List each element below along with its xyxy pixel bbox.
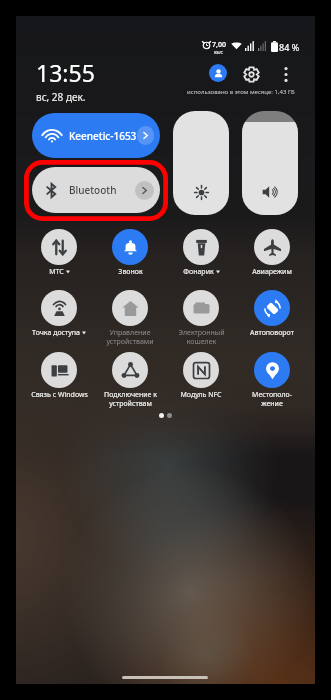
button[interactable]: Brightness <box>173 111 229 215</box>
button[interactable]: Home <box>122 676 208 679</box>
staticText: Управление устройствами <box>106 328 154 346</box>
staticText: Электронный кошелек <box>178 328 225 346</box>
button[interactable]: Подключение к устройствам <box>95 352 165 408</box>
button[interactable]: Keenetic-1653 <box>32 113 160 158</box>
staticText: Модуль NFC <box>180 390 222 400</box>
staticText: КБ/С <box>214 50 224 55</box>
staticText: Связь с Windows <box>31 390 88 400</box>
staticText: использовано в этом месяце: 1,43 ГБ <box>187 88 295 96</box>
button[interactable]: Автоповорот <box>237 290 307 338</box>
button[interactable]: Электронный кошелек <box>166 290 236 346</box>
staticText: Фонарик <box>183 267 214 277</box>
button[interactable]: Авиарежим <box>237 229 307 277</box>
staticText: Точка доступа <box>32 328 80 338</box>
staticText: Местополо- жение <box>252 390 292 408</box>
staticText: 84 % <box>279 41 300 53</box>
staticText: Звонок <box>118 267 143 277</box>
staticText: вс, 28 дек. <box>36 90 86 104</box>
staticText: МТС <box>49 267 64 277</box>
button[interactable]: Account <box>209 64 227 82</box>
button[interactable]: Volume <box>242 111 298 215</box>
staticText: 13:55 <box>36 57 95 88</box>
button[interactable]: Фонарик <box>166 229 236 277</box>
button[interactable]: Settings <box>242 65 260 83</box>
button[interactable]: Местополо- жение <box>237 352 307 408</box>
button[interactable]: Управление устройствами <box>95 290 165 346</box>
button[interactable]: Звонок <box>95 229 165 277</box>
button[interactable]: Модуль NFC <box>166 352 236 400</box>
button[interactable]: More options <box>278 64 293 84</box>
button[interactable]: Bluetooth <box>32 167 160 213</box>
button[interactable]: МТС <box>24 229 94 277</box>
button[interactable]: Связь с Windows <box>24 352 94 400</box>
staticText: Авиарежим <box>252 267 292 277</box>
staticText: Keenetic-1653 <box>69 129 137 143</box>
staticText: 7,00 <box>212 40 226 50</box>
staticText: Подключение к устройствам <box>104 390 157 408</box>
staticText: Bluetooth <box>69 183 117 197</box>
staticText: Автоповорот <box>250 328 294 338</box>
button[interactable]: Точка доступа <box>24 290 94 338</box>
